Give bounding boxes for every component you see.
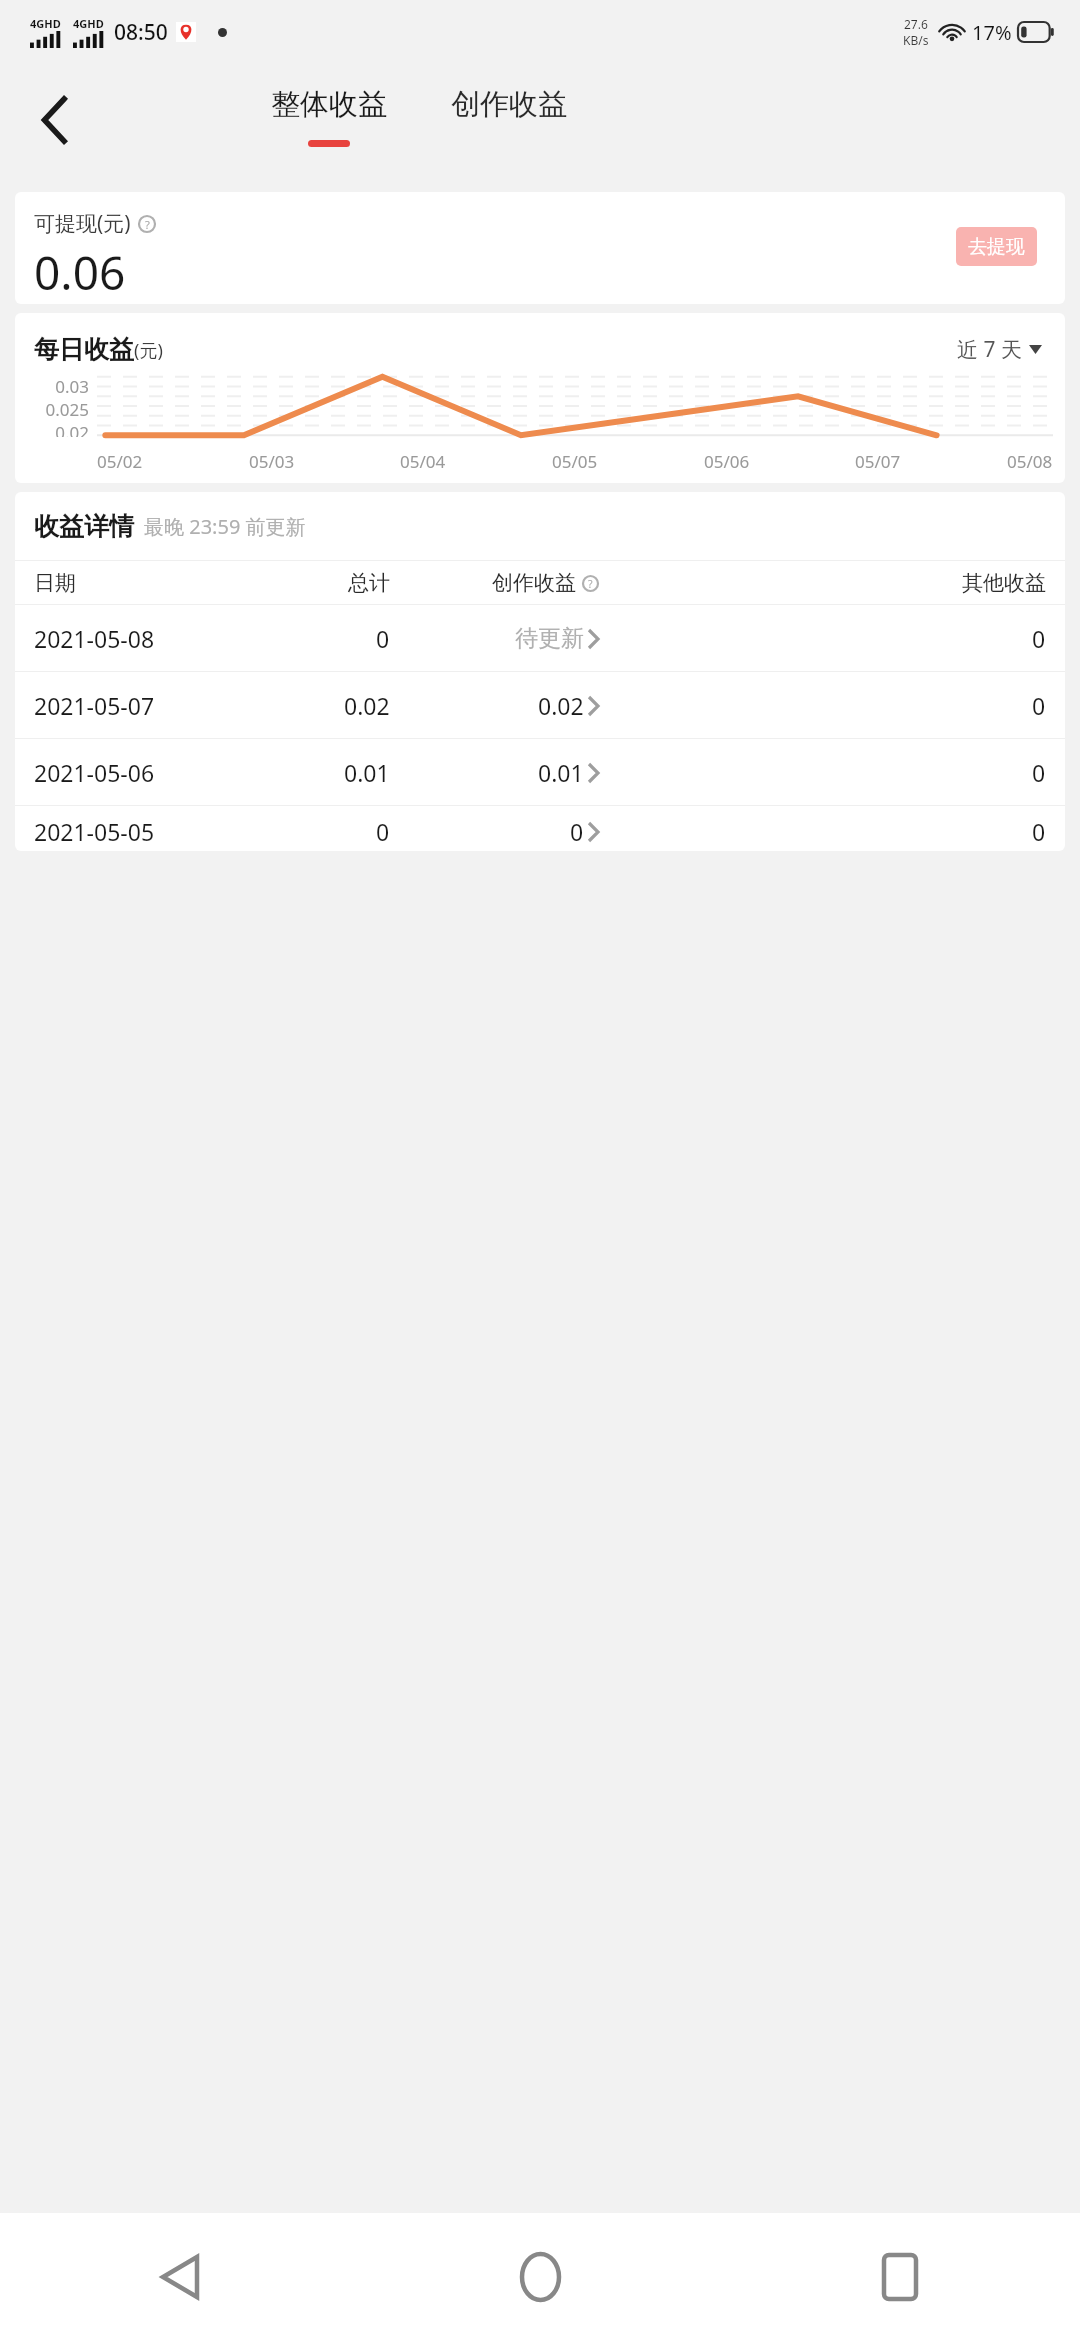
staticText: 整体收益 [271, 86, 387, 123]
staticText: 0 [1032, 623, 1046, 654]
staticText: 27.6 [904, 16, 928, 32]
staticText: 创作收益 [492, 570, 576, 596]
button[interactable]: 去提现 [956, 227, 1037, 266]
staticText: 0 [376, 623, 390, 654]
staticText: 0.01 [344, 757, 390, 788]
staticText: 最晚 23:59 前更新 [144, 513, 306, 540]
button[interactable]: 整体收益 [263, 86, 395, 147]
button[interactable]: 创作收益 [443, 86, 575, 123]
staticText: KB/s [903, 32, 929, 48]
staticText: 2021-05-08 [34, 623, 155, 654]
staticText: 0 [570, 816, 584, 847]
staticText: 0 [1032, 690, 1046, 721]
staticText: 0 [1032, 816, 1046, 847]
staticText: 0.06 [34, 241, 126, 304]
staticText: 待更新 [515, 624, 584, 653]
staticText: 0.025 [45, 398, 89, 421]
staticText: 总计 [348, 570, 390, 596]
button[interactable]: 2021-05-06 [15, 739, 1065, 805]
staticText: 05/08 [1007, 450, 1053, 473]
staticText: 05/04 [400, 450, 446, 473]
button[interactable]: 2021-05-08 [15, 605, 1065, 671]
staticText: 收益详情 [34, 511, 134, 542]
staticText: 2021-05-05 [34, 816, 155, 847]
staticText: 0.02 [55, 421, 89, 437]
staticText: 08:50 [114, 18, 168, 47]
staticText: 近 7 天 [957, 335, 1022, 364]
staticText: ? [588, 577, 593, 591]
staticText: ? [145, 217, 150, 232]
button[interactable]: 2021-05-05 [15, 806, 1065, 851]
staticText: 去提现 [968, 235, 1025, 259]
button[interactable]: 2021-05-07 [15, 672, 1065, 738]
staticText: 17% [972, 19, 1012, 46]
button[interactable]: Back [0, 2213, 360, 2340]
staticText: 0 [376, 816, 390, 847]
staticText: (元) [134, 338, 163, 363]
staticText: 4GHD [73, 16, 104, 31]
staticText: 0 [1032, 757, 1046, 788]
staticText: 4GHD [30, 16, 61, 31]
staticText: 05/07 [855, 450, 901, 473]
staticText: 0.02 [538, 690, 584, 721]
staticText: 05/06 [704, 450, 750, 473]
button[interactable]: 近 7 天 [953, 331, 1046, 368]
staticText: 0.01 [538, 757, 584, 788]
staticText: 2021-05-07 [34, 690, 155, 721]
staticText: 可提现(元) [34, 209, 131, 238]
staticText: 0.02 [344, 690, 390, 721]
staticText: 2021-05-06 [34, 757, 155, 788]
staticText: 05/05 [552, 450, 598, 473]
staticText: 创作收益 [451, 86, 567, 123]
button[interactable]: Home [360, 2213, 720, 2340]
button[interactable]: Back [20, 85, 90, 155]
button[interactable]: Recent apps [720, 2213, 1080, 2340]
staticText: 每日收益 [34, 334, 134, 365]
staticText: 其他收益 [962, 570, 1046, 596]
staticText: 0.03 [55, 375, 89, 398]
staticText: 05/03 [249, 450, 295, 473]
staticText: 05/02 [97, 450, 143, 473]
staticText: 日期 [34, 570, 76, 596]
